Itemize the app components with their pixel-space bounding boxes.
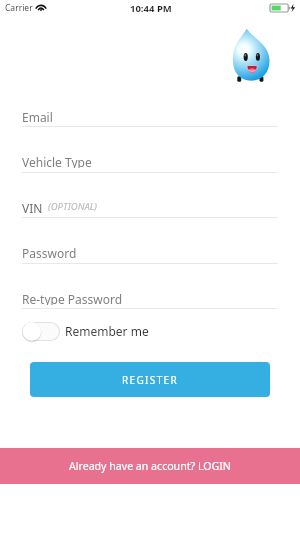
staticText: Remember me bbox=[65, 323, 149, 339]
button[interactable]: Re-type Password bbox=[22, 291, 278, 305]
staticText: Re-type Password bbox=[22, 291, 123, 305]
button[interactable]: Email bbox=[22, 109, 278, 123]
staticText: (OPTIONAL) bbox=[48, 200, 98, 213]
staticText: Email bbox=[22, 109, 53, 123]
button[interactable]: REGISTER bbox=[30, 362, 270, 397]
staticText: REGISTER bbox=[122, 373, 179, 387]
button[interactable]: Vehicle Type bbox=[22, 154, 278, 168]
button[interactable]: Password bbox=[22, 245, 278, 259]
staticText: Password bbox=[22, 245, 77, 259]
button[interactable]: VIN bbox=[22, 200, 278, 214]
staticText: Carrier bbox=[5, 2, 33, 14]
staticText: Vehicle Type bbox=[22, 154, 92, 168]
staticText: Already have an account? LOGIN bbox=[69, 459, 231, 473]
staticText: 10:44 PM bbox=[130, 2, 172, 15]
staticText: VIN bbox=[22, 200, 43, 214]
button[interactable]: Already have an account? LOGIN bbox=[0, 448, 300, 484]
button[interactable]: Remember me bbox=[22, 321, 149, 341]
